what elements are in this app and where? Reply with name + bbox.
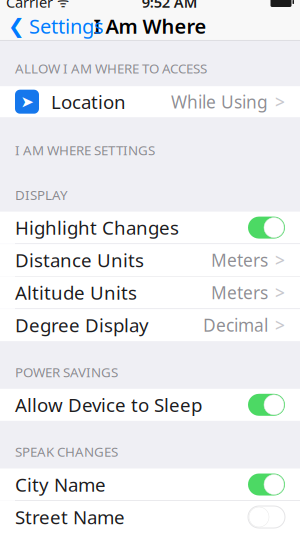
staticText: Allow Device to Sleep (15, 392, 202, 417)
staticText: Street Name (15, 505, 125, 529)
button[interactable]: ➤ (0, 86, 300, 117)
button[interactable]: City Name (0, 468, 300, 500)
button[interactable]: Allow Device to Sleep (0, 389, 300, 421)
staticText: ALLOW I AM WHERE TO ACCESS (15, 59, 207, 77)
staticText: Location (51, 89, 126, 114)
staticText: Decimal (203, 314, 268, 337)
button[interactable]: Degree Display (0, 309, 300, 341)
staticText: DISPLAY (15, 186, 68, 204)
staticText: Settings (29, 13, 104, 39)
staticText: POWER SAVINGS (15, 363, 118, 381)
button[interactable]: Altitude Units (0, 277, 300, 309)
staticText: While Using (171, 90, 268, 113)
staticText: Degree Display (15, 313, 149, 337)
staticText: SPEAK CHANGES (15, 443, 118, 460)
staticText: > (275, 90, 285, 113)
staticText: I AM WHERE SETTINGS (15, 141, 155, 159)
button[interactable]: ❮ (0, 8, 104, 44)
staticText: I Am Where (93, 13, 206, 39)
staticText: > (275, 249, 285, 272)
staticText: ❮ (8, 15, 25, 37)
staticText: City Name (15, 472, 106, 497)
staticText: Altitude Units (15, 280, 137, 305)
staticText: Distance Units (15, 248, 144, 272)
staticText: Meters (211, 281, 268, 304)
staticText: Highlight Changes (15, 215, 179, 240)
staticText: 9:52 AM (142, 0, 198, 12)
button[interactable]: Highlight Changes (0, 212, 300, 244)
staticText: Meters (211, 249, 268, 272)
button[interactable]: Distance Units (0, 244, 300, 276)
staticText: ➤ (20, 93, 33, 111)
staticText: ᯤ (57, 0, 69, 11)
staticText: > (275, 281, 285, 304)
staticText: > (275, 314, 285, 337)
staticText: Carrier (6, 0, 53, 12)
button[interactable]: Street Name (0, 501, 300, 533)
